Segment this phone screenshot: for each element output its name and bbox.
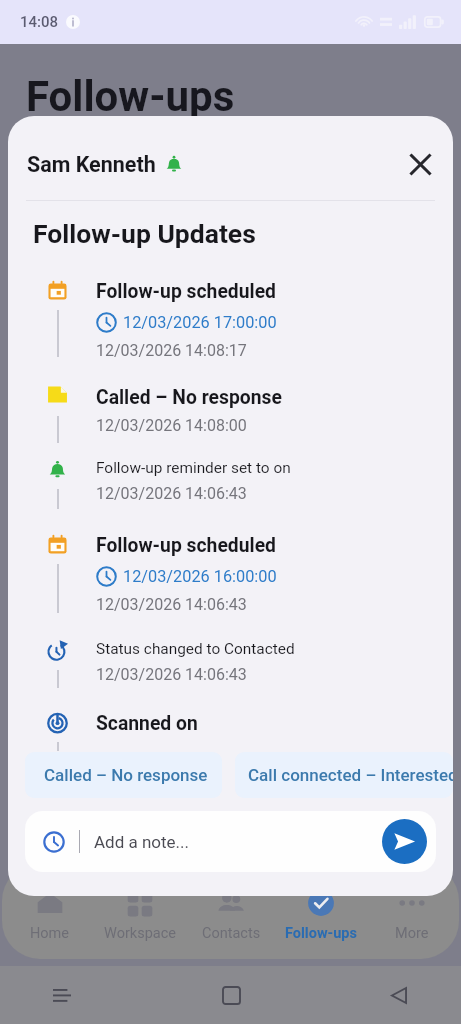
button[interactable]: Follow-up scheduled [8,280,453,360]
staticText: Scanned on [96,712,198,735]
staticText: Called – No response [44,765,208,785]
staticText: Follow-up scheduled [96,280,276,303]
staticText: Add a note... [94,832,190,852]
staticText: 12/03/2026 14:08:00 [96,416,247,435]
button[interactable]: Follow-up reminder set to on [8,459,453,509]
button[interactable]: Close [399,143,441,185]
staticText: Workspace [104,925,176,942]
staticText: 12/03/2026 14:06:43 [96,484,247,503]
button[interactable]: Workspace [97,863,183,959]
staticText: Called – No response [96,386,282,409]
staticText: Status changed to Contacted [96,640,295,658]
button[interactable]: Back [375,971,423,1019]
button[interactable]: Contacts [188,863,274,959]
button[interactable]: Status changed to Contacted [8,640,453,688]
staticText: 12/03/2026 14:06:43 [96,665,247,684]
staticText: Follow-ups [26,72,235,121]
staticText: Follow-up Updates [33,218,256,249]
button[interactable]: Recent apps [38,971,86,1019]
button[interactable]: Called – No response [25,752,222,798]
staticText: 12/03/2026 16:00:00 [123,567,277,586]
button[interactable]: Home [207,971,255,1019]
button[interactable]: Scanned on [8,712,453,751]
staticText: 14:08 [20,13,59,31]
staticText: Follow-up reminder set to on [96,459,291,477]
button[interactable]: Send [382,819,427,864]
button[interactable]: Call connected – Interested [235,752,453,798]
button[interactable]: Follow-up scheduled [8,534,453,614]
staticText: Follow-ups [285,925,357,942]
staticText: Sam Kenneth [27,152,156,177]
button[interactable]: More [369,863,455,959]
staticText: 12/03/2026 14:08:17 [96,341,247,360]
staticText: Follow-up scheduled [96,534,276,557]
staticText: Call connected – Interested [248,765,453,785]
staticText: 12/03/2026 17:00:00 [123,313,277,332]
staticText: Home [30,925,70,942]
staticText: More [395,925,429,942]
button[interactable]: Home [7,863,93,959]
staticText: Contacts [202,925,261,942]
button[interactable]: Called – No response [8,386,453,443]
button[interactable]: Follow-ups [278,863,364,959]
button[interactable]: Set reminder time [40,828,68,856]
staticText: 12/03/2026 14:06:43 [96,595,247,614]
